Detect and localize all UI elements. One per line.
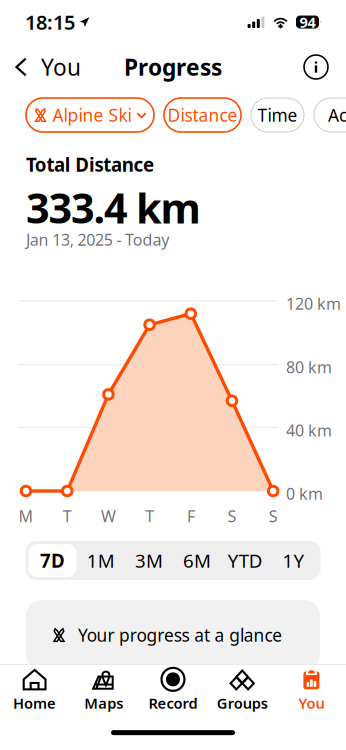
staticText: Time [257, 103, 297, 126]
staticText: W [101, 505, 116, 527]
staticText: T [63, 505, 72, 527]
staticText: Maps [84, 693, 123, 713]
staticText: T [145, 505, 154, 527]
button[interactable]: Maps [69, 665, 138, 717]
staticText: 6M [183, 548, 211, 573]
staticText: 120 km [286, 293, 341, 314]
staticText: Groups [217, 693, 268, 713]
button[interactable]: Info [293, 44, 339, 90]
staticText: Jan 13, 2025 - Today [26, 229, 169, 250]
button[interactable]: 7D [28, 544, 77, 577]
staticText: 1M [87, 548, 115, 573]
button[interactable]: Distance [164, 98, 241, 132]
staticText: Home [13, 693, 56, 713]
button[interactable]: 1M [77, 544, 125, 577]
staticText: 3M [135, 548, 163, 573]
staticText: S [228, 505, 237, 527]
staticText: 18:15 [25, 9, 75, 35]
staticText: Record [148, 693, 197, 713]
button[interactable]: YTD [221, 544, 269, 577]
staticText: 333.4 km [26, 180, 200, 235]
button[interactable]: Your progress at a glance [26, 600, 320, 670]
staticText: 80 km [286, 356, 332, 377]
button[interactable]: Act [314, 98, 346, 132]
staticText: Your progress at a glance [78, 623, 282, 646]
staticText: 40 km [286, 420, 332, 441]
button[interactable]: Record [138, 665, 208, 717]
button[interactable]: Time [251, 98, 304, 132]
button[interactable]: You [277, 665, 346, 717]
staticText: Total Distance [26, 152, 154, 177]
staticText: M [19, 505, 34, 527]
staticText: Progress [124, 52, 222, 82]
button[interactable]: Alpine Ski [26, 98, 154, 132]
staticText: Alpine Ski [52, 103, 131, 126]
staticText: YTD [228, 548, 263, 573]
button[interactable]: 6M [173, 544, 221, 577]
button[interactable]: You [0, 44, 100, 90]
staticText: You [41, 52, 81, 82]
button[interactable]: Groups [208, 665, 277, 717]
staticText: Act [328, 103, 346, 126]
button[interactable]: 1Y [269, 544, 318, 577]
staticText: F [187, 505, 195, 527]
staticText: Distance [167, 103, 237, 126]
button[interactable]: 3M [125, 544, 173, 577]
staticText: 7D [40, 548, 65, 573]
staticText: 1Y [282, 548, 304, 573]
staticText: 94 [299, 12, 315, 32]
staticText: 0 km [286, 483, 323, 504]
staticText: You [298, 693, 324, 713]
button[interactable]: Home [0, 665, 69, 717]
staticText: S [269, 505, 278, 527]
